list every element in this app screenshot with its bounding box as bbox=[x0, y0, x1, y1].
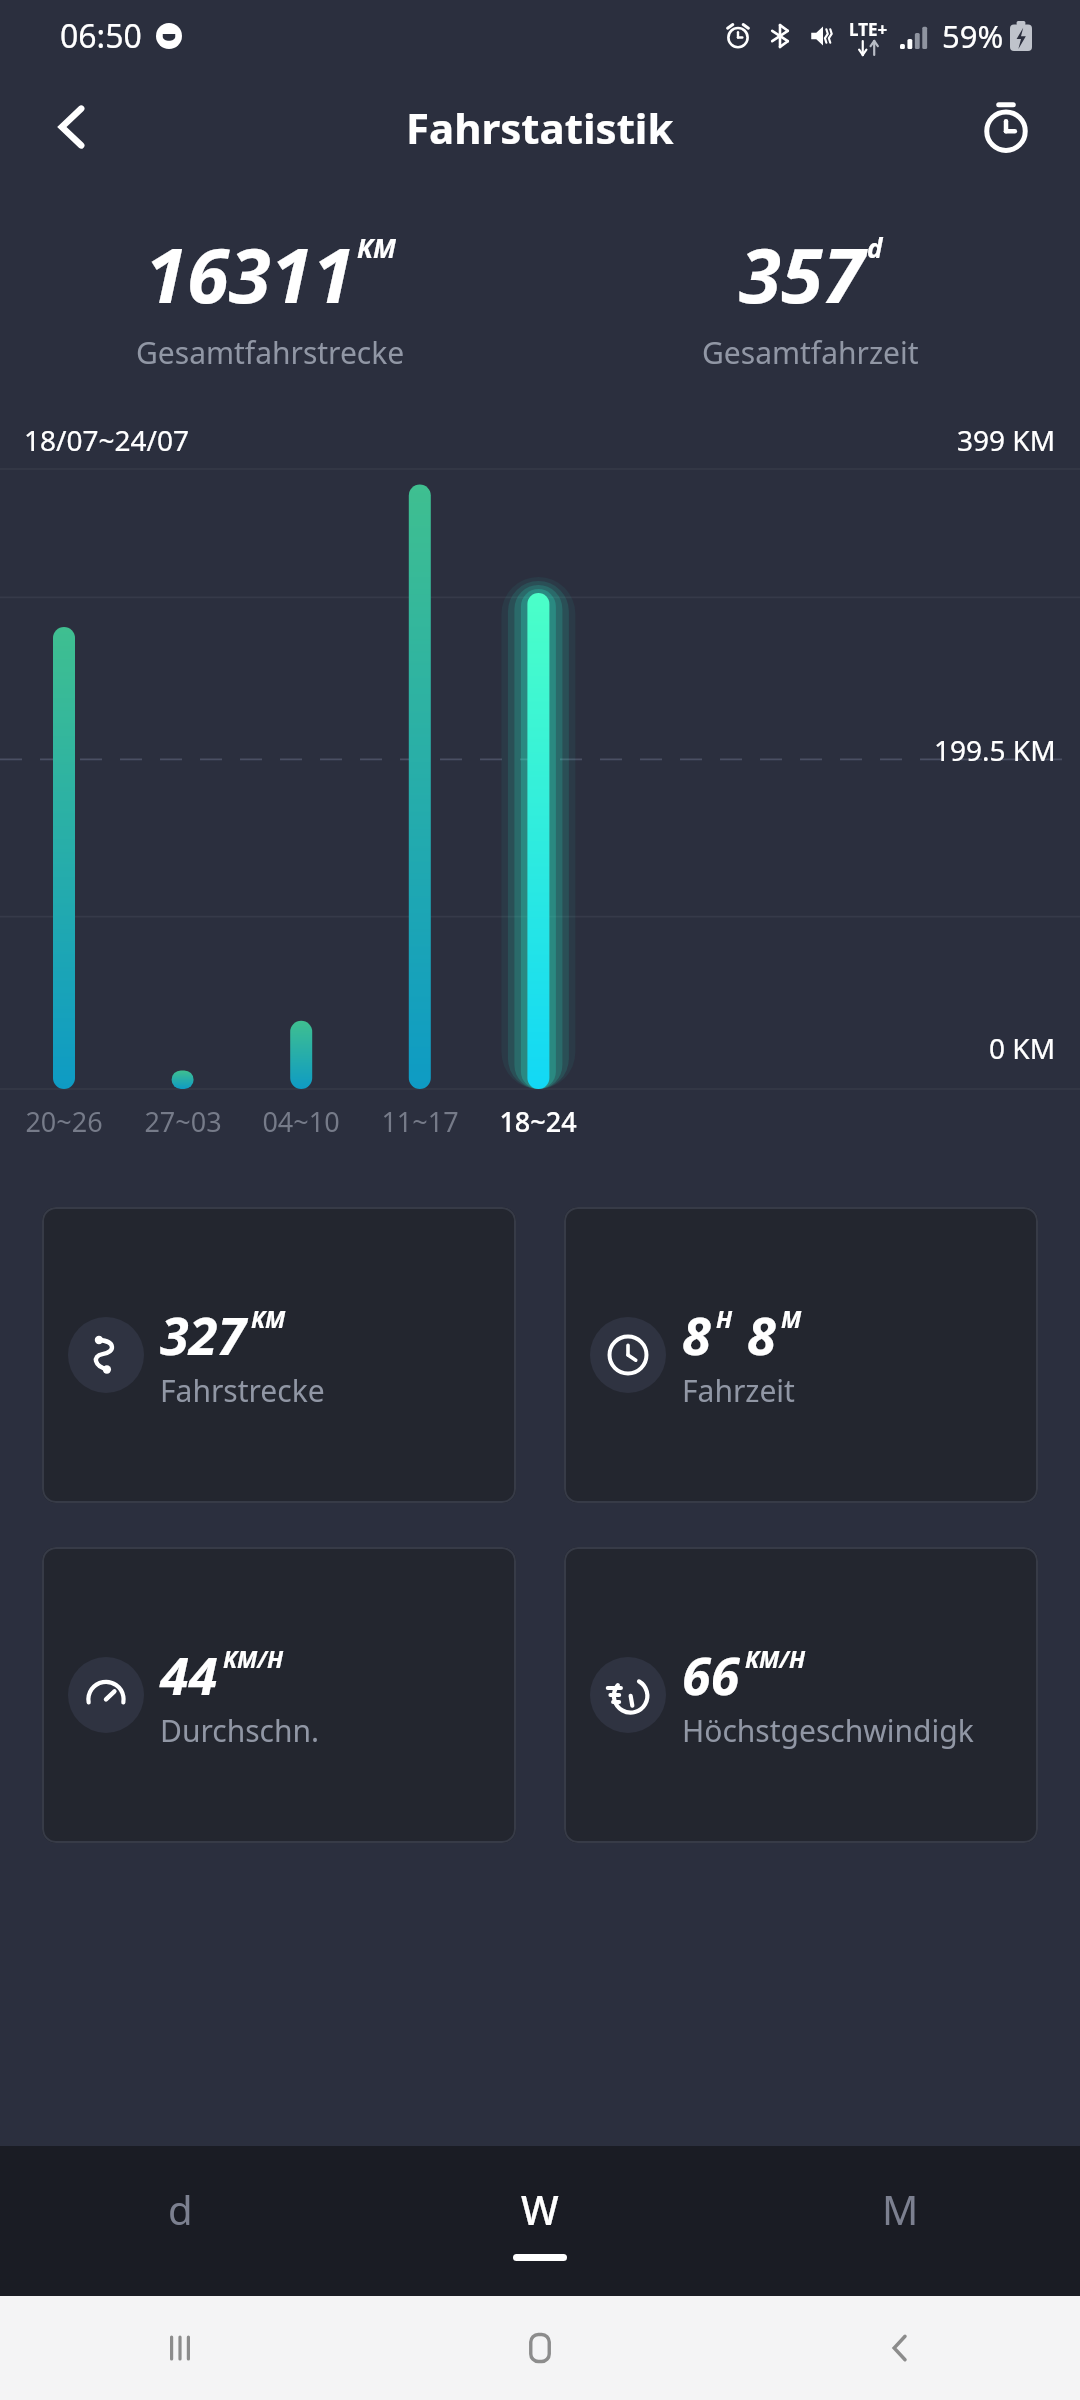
button[interactable]: Home bbox=[360, 2296, 720, 2400]
staticText: M bbox=[781, 1303, 802, 1334]
button[interactable]: d bbox=[0, 2146, 360, 2296]
staticText: d bbox=[168, 2182, 193, 2236]
staticText: LTE+ bbox=[849, 18, 888, 41]
staticText: 16311 bbox=[145, 222, 355, 326]
staticText: Höchstgeschwindigk bbox=[682, 1710, 974, 1751]
staticText: Fahrzeit bbox=[682, 1370, 795, 1411]
button[interactable]: 66 bbox=[564, 1547, 1038, 1843]
button[interactable]: Recents bbox=[0, 2296, 360, 2400]
staticText: 327 bbox=[160, 1299, 246, 1370]
staticText: Durchschn. bbox=[160, 1710, 320, 1751]
staticText: 8 bbox=[747, 1299, 776, 1370]
staticText: 20~26 bbox=[10, 1103, 118, 1140]
button[interactable]: M bbox=[720, 2146, 1080, 2296]
staticText: KM bbox=[357, 230, 396, 265]
staticText: Fahrstatistik bbox=[406, 99, 674, 156]
staticText: 357 bbox=[739, 222, 865, 326]
staticText: 0 KM bbox=[989, 1029, 1056, 1067]
staticText: 27~03 bbox=[129, 1103, 237, 1140]
button[interactable]: 327 bbox=[42, 1207, 516, 1503]
staticText: KM/H bbox=[745, 1643, 806, 1674]
staticText: Fahrstrecke bbox=[160, 1370, 325, 1411]
staticText: W bbox=[521, 2182, 559, 2236]
staticText: 59% bbox=[942, 15, 1004, 57]
staticText: H bbox=[716, 1303, 733, 1334]
button[interactable]: W bbox=[360, 2146, 720, 2296]
staticText: KM/H bbox=[223, 1643, 284, 1674]
staticText: M bbox=[882, 2182, 919, 2236]
staticText: 199.5 KM bbox=[934, 731, 1056, 769]
staticText: d bbox=[867, 230, 883, 265]
button[interactable]: Back bbox=[720, 2296, 1080, 2400]
staticText: 04~10 bbox=[247, 1103, 355, 1140]
staticText: 66 bbox=[682, 1639, 740, 1710]
staticText: 399 KM bbox=[957, 421, 1056, 459]
staticText: Gesamtfahrzeit bbox=[702, 332, 919, 373]
button[interactable]: 44 bbox=[42, 1547, 516, 1843]
staticText: 44 bbox=[160, 1639, 218, 1710]
staticText: 18/07~24/07 bbox=[24, 421, 189, 459]
staticText: 8 bbox=[682, 1299, 711, 1370]
button[interactable]: Timer bbox=[968, 89, 1044, 165]
button[interactable]: 8 bbox=[564, 1207, 1038, 1503]
button[interactable]: Back bbox=[36, 91, 108, 163]
staticText: 11~17 bbox=[366, 1103, 474, 1140]
staticText: KM bbox=[251, 1303, 286, 1334]
staticText: 06:50 bbox=[60, 14, 142, 58]
staticText: 18~24 bbox=[484, 1103, 592, 1140]
staticText: Gesamtfahrstrecke bbox=[136, 332, 405, 373]
